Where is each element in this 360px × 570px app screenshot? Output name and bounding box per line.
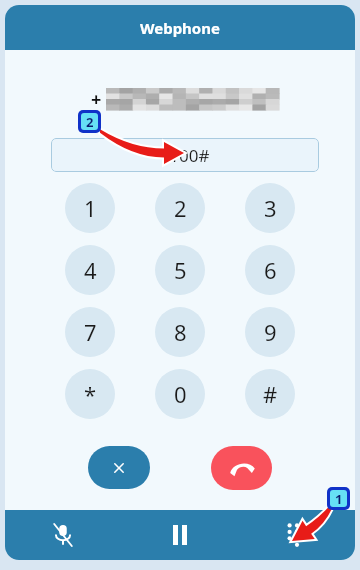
button[interactable]: 6 xyxy=(245,245,295,295)
button[interactable]: 2 xyxy=(155,183,205,233)
button[interactable]: # xyxy=(245,369,295,419)
button[interactable]: 8 xyxy=(155,307,205,357)
button[interactable]: * xyxy=(65,369,115,419)
button[interactable]: End call xyxy=(211,446,272,490)
staticText: 0 xyxy=(174,379,187,409)
button[interactable]: Mute xyxy=(5,510,121,560)
staticText: + xyxy=(91,87,102,112)
staticText: 7 xyxy=(84,317,97,347)
button[interactable]: 7 xyxy=(65,307,115,357)
staticText: Webphone xyxy=(140,18,220,38)
button[interactable]: 5 xyxy=(155,245,205,295)
staticText: 4 xyxy=(84,255,97,285)
staticText: 2 xyxy=(174,193,187,223)
staticText: 8 xyxy=(174,317,187,347)
button[interactable]: 9 xyxy=(245,307,295,357)
button[interactable]: 0 xyxy=(155,369,205,419)
staticText: *100# xyxy=(160,144,210,167)
staticText: 9 xyxy=(264,317,277,347)
staticText: * xyxy=(84,379,97,409)
staticText: 5 xyxy=(174,255,187,285)
button[interactable]: Dial pad xyxy=(238,510,355,560)
staticText: 1 xyxy=(84,193,97,223)
button[interactable]: *100# xyxy=(51,138,319,172)
button[interactable]: Hold xyxy=(121,510,238,560)
button[interactable]: 1 xyxy=(65,183,115,233)
staticText: 2 xyxy=(86,113,94,130)
staticText: 1 xyxy=(335,490,343,507)
button[interactable]: 4 xyxy=(65,245,115,295)
button[interactable]: 3 xyxy=(245,183,295,233)
staticText: 6 xyxy=(264,255,277,285)
staticText: 3 xyxy=(264,193,277,223)
staticText: # xyxy=(263,379,278,409)
button[interactable]: Cancel xyxy=(88,446,150,489)
